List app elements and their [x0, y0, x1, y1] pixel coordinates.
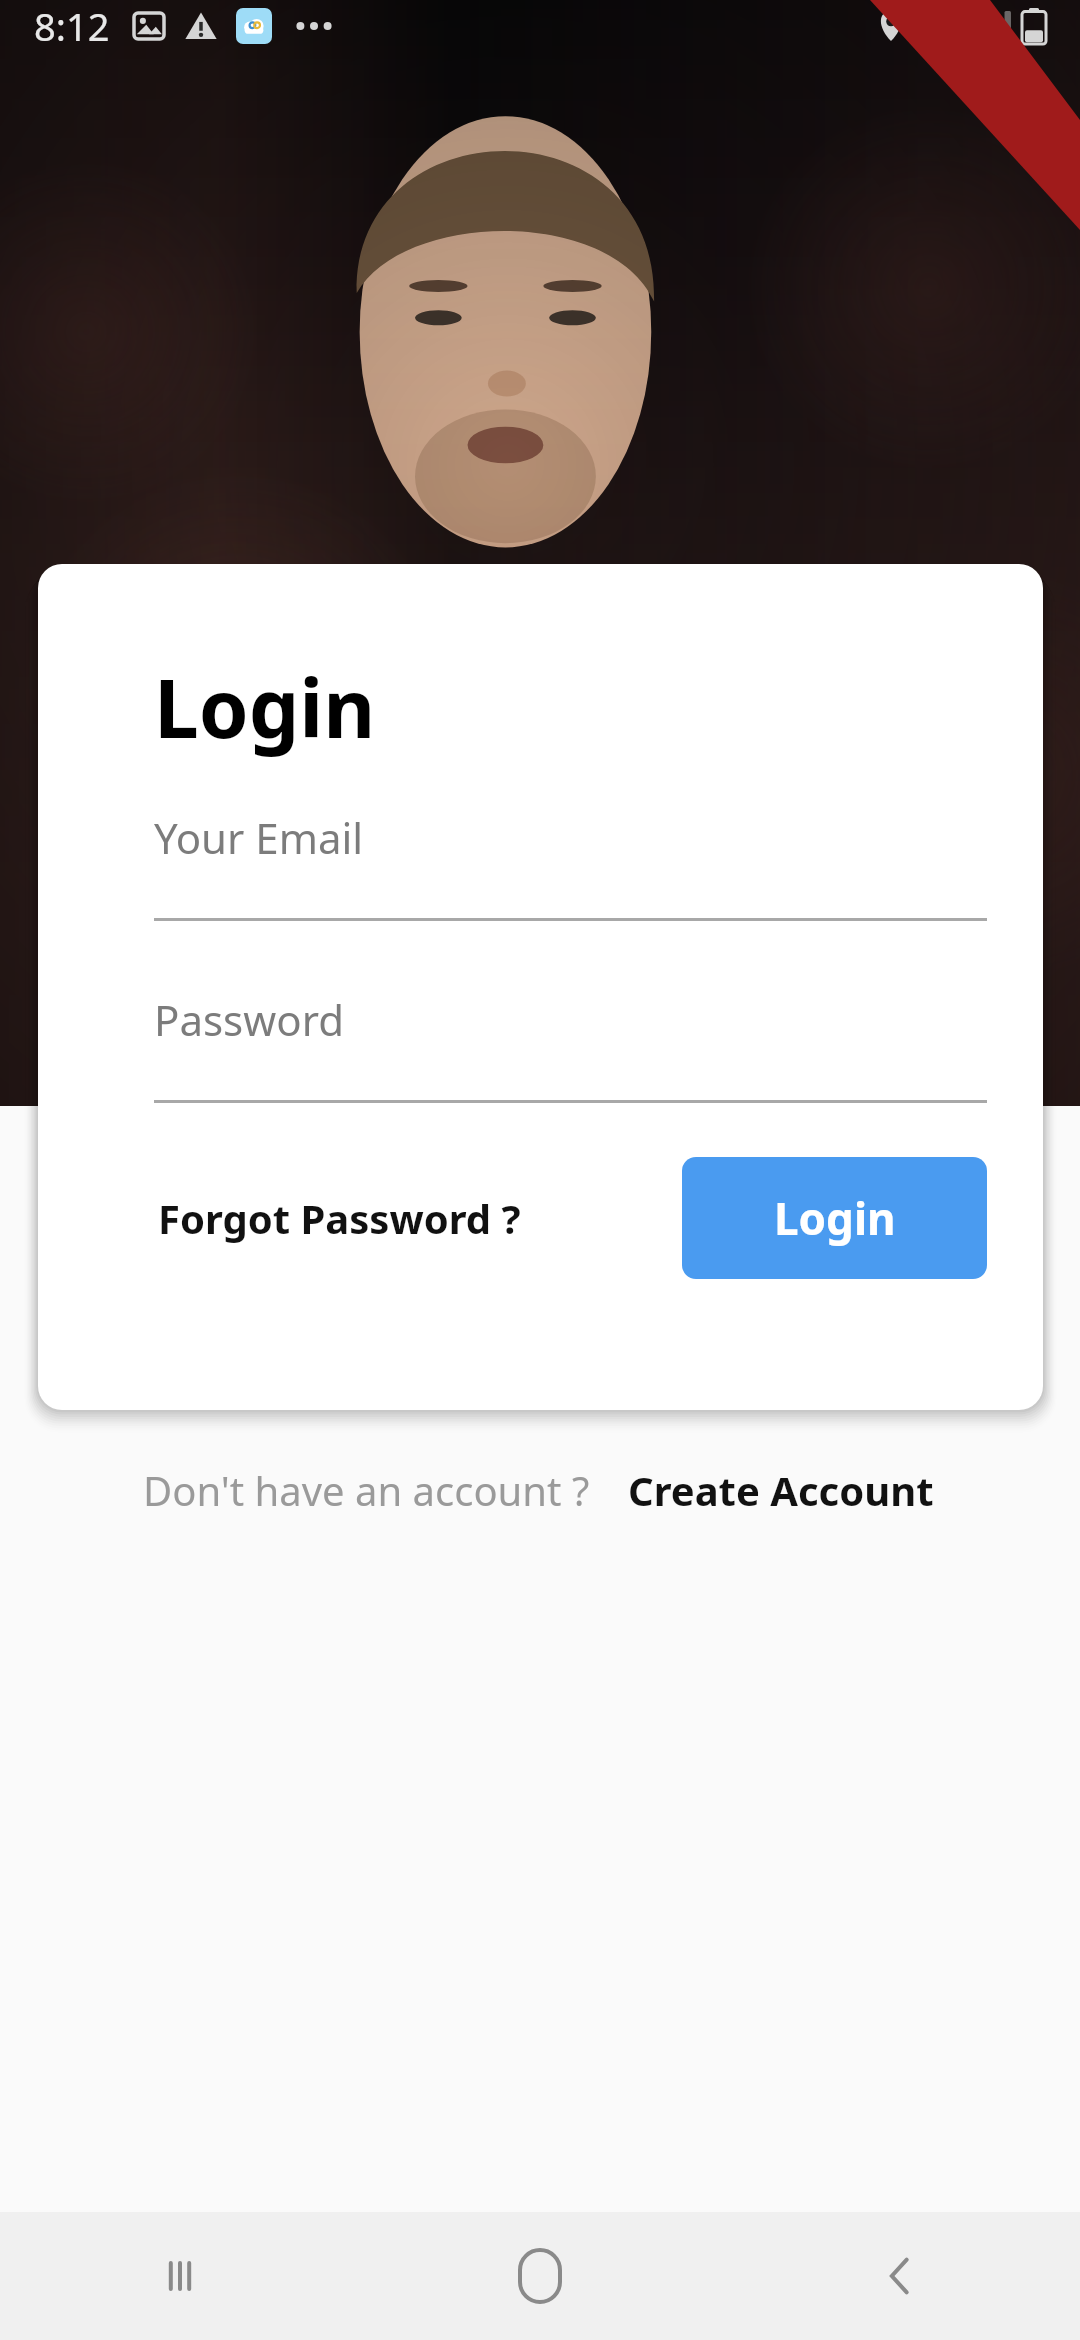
staticText: Forgot Password ?: [158, 1191, 521, 1245]
staticText: Don't have an account ?: [143, 1463, 590, 1517]
button[interactable]: Create Account: [624, 1455, 938, 1525]
button[interactable]: Home: [360, 2212, 720, 2340]
button[interactable]: Recents: [0, 2212, 360, 2340]
staticText: Login: [154, 652, 376, 761]
button[interactable]: Back: [720, 2212, 1080, 2340]
button[interactable]: Login: [682, 1157, 987, 1279]
staticText: Your Email: [154, 809, 364, 866]
button[interactable]: Forgot Password ?: [154, 1181, 525, 1255]
staticText: Password: [154, 991, 344, 1048]
staticText: 8:12: [34, 0, 110, 52]
staticText: Login: [774, 1188, 896, 1248]
staticText: Create Account: [628, 1463, 934, 1517]
